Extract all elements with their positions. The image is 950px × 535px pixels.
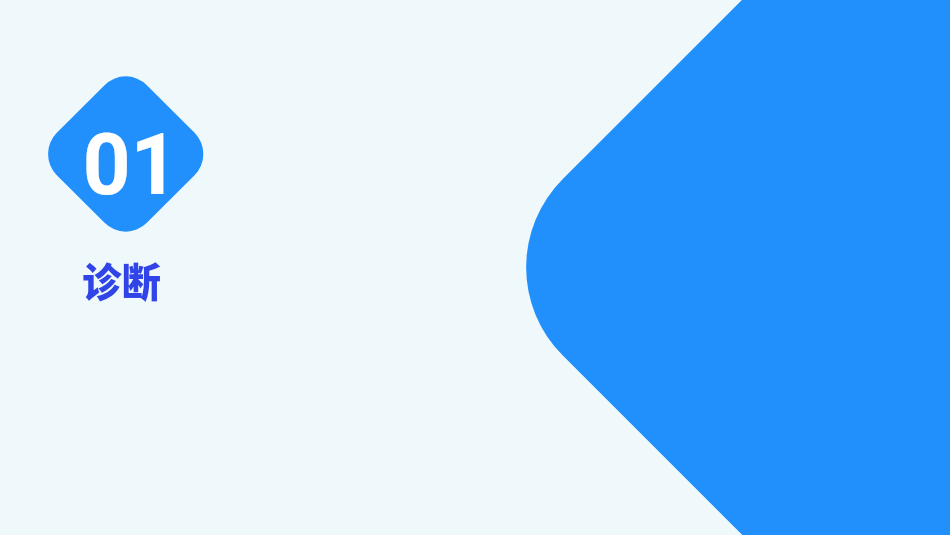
staticText: 01: [82, 114, 178, 215]
button[interactable]: Section 01: [46, 74, 206, 234]
button[interactable]: 诊断: [82, 251, 161, 309]
